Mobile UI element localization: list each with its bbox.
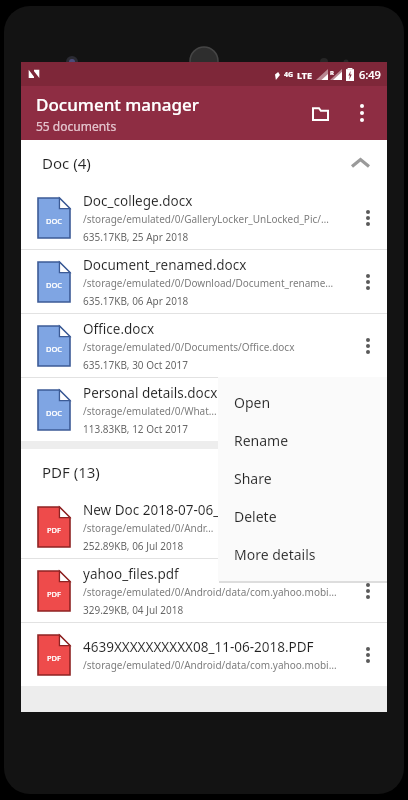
- button[interactable]: More options: [353, 314, 383, 377]
- staticText: New Doc 2018-07-06_…: [83, 501, 230, 519]
- staticText: 4G: [284, 70, 294, 80]
- staticText: DOC: [46, 408, 63, 418]
- staticText: 635.17KB, 30 Oct 2017: [83, 358, 188, 372]
- button[interactable]: More options: [353, 186, 383, 249]
- staticText: /storage/emulated/0/Download/Document_re…: [83, 276, 334, 290]
- button[interactable]: More options: [341, 92, 383, 134]
- staticText: yahoo_files.pdf: [83, 565, 179, 583]
- staticText: LTE: [297, 69, 313, 81]
- button[interactable]: PDF: [21, 495, 387, 558]
- button[interactable]: DOC: [21, 250, 387, 313]
- staticText: 4639XXXXXXXXXX08_11-06-2018.PDF: [83, 638, 314, 656]
- staticText: 55 documents: [36, 118, 117, 134]
- staticText: R: [330, 69, 334, 77]
- staticText: 252.89KB, 06 Jul 2018: [83, 539, 184, 553]
- staticText: Doc_college.docx: [83, 192, 193, 210]
- staticText: DOC: [46, 344, 63, 354]
- staticText: Office.docx: [83, 320, 155, 338]
- staticText: /storage/emulated/0/Android/data/com.yah…: [83, 585, 337, 599]
- button[interactable]: More options: [353, 250, 383, 313]
- button[interactable]: More options: [353, 623, 383, 686]
- staticText: PDF: [47, 525, 62, 535]
- staticText: PDF (13): [42, 462, 100, 482]
- staticText: PDF: [47, 589, 62, 599]
- button[interactable]: DOC: [21, 186, 387, 249]
- staticText: /storage/emulated/0/Andr…: [83, 521, 214, 535]
- staticText: /storage/emulated/0/Documents/Office.doc…: [83, 340, 295, 354]
- button[interactable]: Open: [218, 383, 387, 421]
- staticText: Document_renamed.docx: [83, 256, 247, 274]
- button[interactable]: PDF (13): [21, 449, 387, 495]
- staticText: Document manager: [36, 93, 199, 116]
- staticText: 329.29KB, 04 Jul 2018: [83, 603, 184, 617]
- button[interactable]: PDF: [21, 559, 387, 622]
- staticText: /storage/emulated/0/What…: [83, 404, 217, 418]
- staticText: Delete: [234, 507, 277, 526]
- staticText: 113.83KB, 12 Oct 2017: [83, 422, 188, 436]
- button[interactable]: Doc (4): [21, 140, 387, 186]
- staticText: DOC: [46, 280, 63, 290]
- button[interactable]: More details: [218, 535, 387, 573]
- button[interactable]: DOC: [21, 378, 387, 441]
- staticText: 635.17KB, 06 Apr 2018: [83, 294, 189, 308]
- staticText: Open: [234, 393, 271, 412]
- staticText: Doc (4): [42, 153, 91, 173]
- button[interactable]: Share: [218, 459, 387, 497]
- staticText: /storage/emulated/0/GalleryLocker_UnLock…: [83, 212, 329, 226]
- staticText: Share: [234, 469, 272, 488]
- button[interactable]: Delete: [218, 497, 387, 535]
- button[interactable]: More options: [353, 559, 383, 622]
- staticText: More details: [234, 545, 316, 564]
- staticText: 6:49: [359, 67, 381, 82]
- staticText: Personal details.docx: [83, 384, 218, 402]
- button[interactable]: PDF: [21, 623, 387, 686]
- staticText: /storage/emulated/0/Android/data/com.yah…: [83, 658, 337, 672]
- staticText: PDF: [47, 653, 62, 663]
- staticText: Rename: [234, 431, 289, 450]
- staticText: 635.17KB, 25 Apr 2018: [83, 230, 189, 244]
- button[interactable]: DOC: [21, 314, 387, 377]
- staticText: DOC: [46, 216, 63, 226]
- button[interactable]: Rename: [218, 421, 387, 459]
- button[interactable]: Folder: [299, 92, 341, 134]
